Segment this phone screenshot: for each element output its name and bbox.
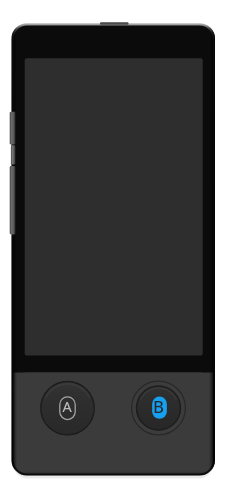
button[interactable]: Button B (131, 381, 186, 436)
staticText: A (62, 397, 72, 417)
button[interactable]: Button A (40, 381, 94, 435)
staticText: B (153, 395, 164, 418)
